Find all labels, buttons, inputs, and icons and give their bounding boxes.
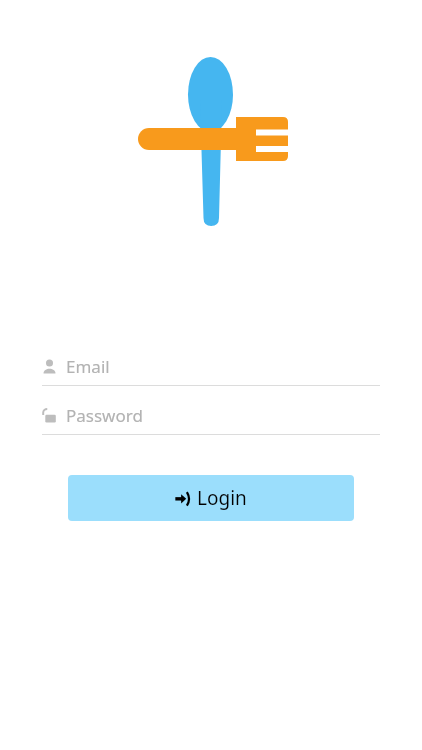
other: Email (42, 359, 57, 374)
button[interactable]: Login (68, 475, 354, 521)
button[interactable]: Email (42, 352, 380, 386)
other: Password (42, 408, 57, 423)
button[interactable]: Password (42, 401, 380, 435)
staticText: Login (197, 485, 247, 511)
staticText: Password (66, 404, 143, 427)
staticText: Email (66, 355, 110, 378)
